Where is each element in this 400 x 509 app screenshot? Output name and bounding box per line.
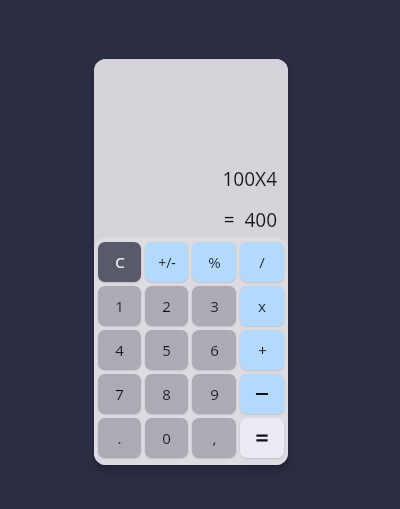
button[interactable]: Zero — [145, 418, 188, 458]
button[interactable]: Percent — [192, 242, 236, 282]
staticText: x — [258, 296, 266, 316]
staticText: 1 — [115, 296, 124, 316]
staticText: . — [117, 428, 122, 448]
staticText: 4 — [115, 340, 124, 360]
button[interactable]: Nine — [192, 374, 236, 414]
staticText: / — [259, 252, 265, 272]
staticText: = 400 — [223, 207, 277, 233]
button[interactable]: Two — [145, 286, 188, 326]
staticText: 7 — [115, 384, 124, 404]
button[interactable]: Four — [98, 330, 141, 370]
staticText: % — [208, 252, 221, 272]
button[interactable]: Decimal point — [98, 418, 141, 458]
staticText: 5 — [162, 340, 171, 360]
button[interactable]: One — [98, 286, 141, 326]
staticText: 2 — [162, 296, 171, 316]
button[interactable]: Equals — [240, 418, 284, 458]
button[interactable]: Subtract — [240, 374, 284, 414]
button[interactable]: Five — [145, 330, 188, 370]
button[interactable]: Clear — [98, 242, 141, 282]
staticText: +/- — [158, 253, 176, 272]
button[interactable]: Comma — [192, 418, 236, 458]
staticText: 9 — [210, 384, 219, 404]
button[interactable]: Six — [192, 330, 236, 370]
button[interactable]: Multiply — [240, 286, 284, 326]
staticText: 8 — [162, 384, 171, 404]
button[interactable]: Eight — [145, 374, 188, 414]
staticText: , — [212, 428, 217, 448]
staticText: C — [115, 252, 125, 272]
button[interactable]: Seven — [98, 374, 141, 414]
staticText: 3 — [210, 296, 219, 316]
button[interactable]: Three — [192, 286, 236, 326]
staticText: 0 — [162, 428, 171, 448]
staticText: + — [258, 340, 267, 360]
button[interactable]: Toggle sign — [145, 242, 188, 282]
button[interactable]: Add — [240, 330, 284, 370]
staticText: 100X4 — [222, 166, 277, 192]
staticText: 6 — [210, 340, 219, 360]
button[interactable]: Divide — [240, 242, 284, 282]
